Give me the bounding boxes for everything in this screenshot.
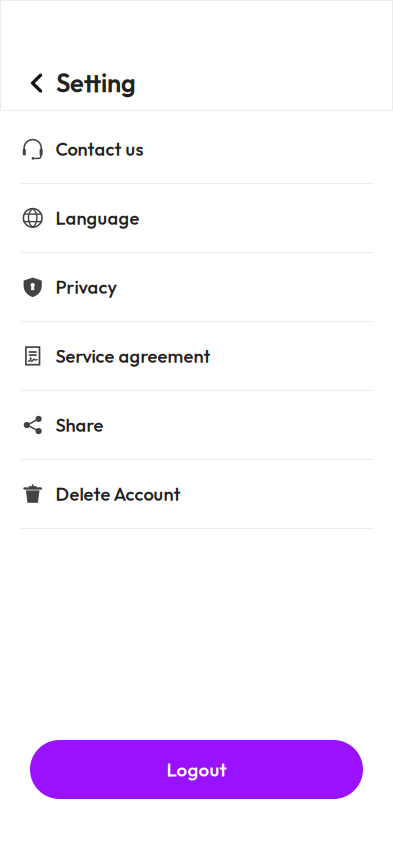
button[interactable]: Back [0,61,56,105]
staticText: Setting [56,67,136,99]
staticText: Logout [166,758,226,781]
staticText: Contact us [55,137,143,160]
button[interactable]: Language [0,184,393,253]
staticText: Language [55,206,139,229]
button[interactable]: Privacy [0,253,393,322]
staticText: Privacy [55,275,117,298]
button[interactable]: Delete Account [0,460,393,529]
button[interactable]: Contact us [0,115,393,184]
button[interactable]: Logout [30,740,363,799]
button[interactable]: Share [0,391,393,460]
staticText: Service agreement [55,344,210,367]
staticText: Share [55,413,103,436]
button[interactable]: Service agreement [0,322,393,391]
staticText: Delete Account [55,482,180,505]
